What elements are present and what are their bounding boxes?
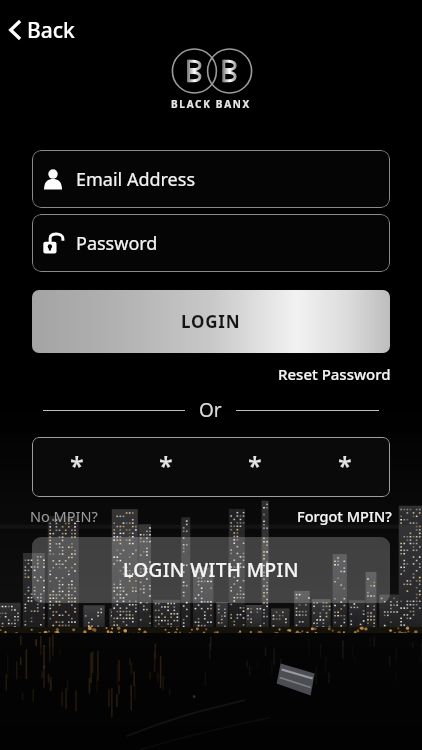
button[interactable]: No MPIN?	[30, 504, 98, 528]
button[interactable]: LOGIN	[32, 290, 390, 353]
staticText: Reset Password	[278, 364, 391, 384]
staticText: No MPIN?	[30, 506, 98, 526]
staticText: BLACK BANX	[171, 97, 252, 111]
staticText: Forgot MPIN?	[297, 506, 392, 526]
staticText: *	[248, 448, 262, 482]
staticText: *	[338, 448, 352, 482]
button[interactable]: Forgot MPIN?	[297, 504, 392, 528]
staticText: Password	[76, 231, 158, 256]
button[interactable]: Password	[32, 214, 390, 272]
button[interactable]: LOGIN WITH MPIN	[32, 537, 390, 603]
staticText: Or	[199, 397, 222, 423]
staticText: Back	[27, 16, 75, 45]
staticText: LOGIN WITH MPIN	[123, 557, 299, 583]
staticText: *	[159, 448, 173, 482]
button[interactable]: *	[32, 437, 390, 497]
button[interactable]: Reset Password	[278, 362, 422, 386]
button[interactable]: Back	[0, 14, 89, 46]
staticText: LOGIN	[181, 310, 241, 333]
button[interactable]: Email Address	[32, 150, 390, 208]
staticText: *	[70, 448, 84, 482]
staticText: Email Address	[76, 167, 196, 192]
